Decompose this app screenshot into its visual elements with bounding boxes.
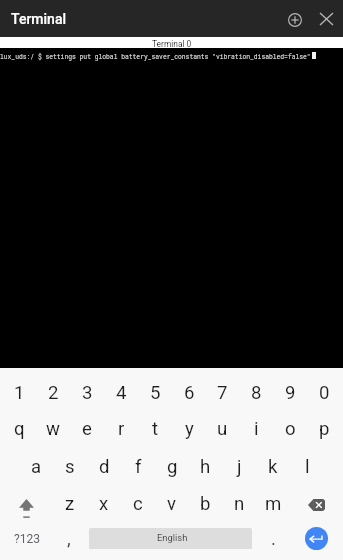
button[interactable]: d bbox=[87, 449, 121, 485]
staticText: p bbox=[319, 418, 330, 440]
staticText: . bbox=[271, 528, 276, 550]
button[interactable]: 2 bbox=[36, 375, 70, 411]
button[interactable]: New session bbox=[276, 0, 313, 37]
staticText: y bbox=[185, 418, 194, 440]
staticText: h bbox=[200, 456, 211, 478]
button[interactable]: 6 bbox=[172, 375, 206, 411]
button[interactable]: Shift bbox=[0, 487, 51, 523]
staticText: , bbox=[67, 528, 71, 550]
button[interactable]: s bbox=[53, 449, 87, 485]
staticText: lux_uds:/ $ settings put global battery_… bbox=[0, 52, 311, 60]
button[interactable]: Enter bbox=[305, 527, 328, 550]
button[interactable]: n bbox=[222, 486, 256, 522]
staticText: d bbox=[99, 456, 110, 478]
button[interactable]: r bbox=[104, 411, 138, 447]
button[interactable]: 5 bbox=[138, 375, 172, 411]
staticText: 4 bbox=[116, 382, 127, 404]
button[interactable]: ?123 bbox=[1, 521, 53, 557]
staticText: j bbox=[237, 456, 242, 478]
staticText: ?123 bbox=[14, 532, 41, 546]
button[interactable]: z bbox=[53, 486, 87, 522]
button[interactable]: f bbox=[121, 449, 155, 485]
button[interactable]: l bbox=[290, 449, 324, 485]
button[interactable]: v bbox=[155, 486, 189, 522]
staticText: z bbox=[65, 493, 75, 515]
button[interactable]: Backspace bbox=[291, 487, 342, 523]
staticText: o bbox=[285, 418, 296, 440]
staticText: 6 bbox=[184, 382, 195, 404]
staticText: English bbox=[157, 532, 188, 543]
staticText: c bbox=[133, 493, 143, 515]
button[interactable]: g bbox=[155, 449, 189, 485]
staticText: g bbox=[167, 456, 178, 478]
staticText: i bbox=[254, 418, 259, 440]
button[interactable]: 1 bbox=[2, 375, 36, 411]
staticText: v bbox=[167, 493, 177, 515]
staticText: n bbox=[234, 493, 245, 515]
button[interactable]: b bbox=[188, 486, 222, 522]
button[interactable]: m bbox=[256, 486, 290, 522]
staticText: 9 bbox=[285, 382, 296, 404]
staticText: 2 bbox=[48, 382, 59, 404]
button[interactable]: w bbox=[36, 411, 70, 447]
staticText: x bbox=[99, 493, 109, 515]
staticText: t bbox=[152, 418, 159, 440]
staticText: k bbox=[268, 456, 278, 478]
button[interactable]: . bbox=[256, 521, 290, 557]
button[interactable]: Close bbox=[308, 0, 343, 37]
staticText: 1 bbox=[14, 382, 25, 404]
staticText: q bbox=[14, 418, 25, 440]
button[interactable]: x bbox=[87, 486, 121, 522]
button[interactable]: c bbox=[121, 486, 155, 522]
button[interactable]: English bbox=[89, 528, 252, 549]
button[interactable]: y bbox=[172, 411, 206, 447]
button[interactable]: u bbox=[205, 411, 239, 447]
button[interactable]: , bbox=[52, 521, 86, 557]
button[interactable]: 7 bbox=[205, 375, 239, 411]
button[interactable]: 8 bbox=[239, 375, 273, 411]
staticText: 0 bbox=[319, 382, 330, 404]
staticText: r bbox=[118, 418, 125, 440]
button[interactable]: a bbox=[19, 449, 53, 485]
staticText: Terminal 0 bbox=[152, 39, 192, 49]
staticText: m bbox=[265, 493, 282, 515]
button[interactable]: 0 bbox=[307, 375, 341, 411]
button[interactable]: Terminal 0 bbox=[0, 37, 343, 48]
button[interactable]: i bbox=[239, 411, 273, 447]
staticText: 3 bbox=[82, 382, 93, 404]
staticText: s bbox=[65, 456, 75, 478]
button[interactable]: j bbox=[222, 449, 256, 485]
button[interactable]: 3 bbox=[70, 375, 104, 411]
button[interactable]: p bbox=[307, 411, 341, 447]
button[interactable]: e bbox=[70, 411, 104, 447]
staticText: e bbox=[82, 418, 92, 440]
staticText: b bbox=[200, 493, 211, 515]
button[interactable]: k bbox=[256, 449, 290, 485]
staticText: 7 bbox=[217, 382, 228, 404]
button[interactable]: q bbox=[2, 411, 36, 447]
button[interactable]: o bbox=[273, 411, 307, 447]
button[interactable]: h bbox=[188, 449, 222, 485]
staticText: 5 bbox=[150, 382, 161, 404]
staticText: 8 bbox=[251, 382, 262, 404]
staticText: f bbox=[135, 456, 142, 478]
button[interactable]: 9 bbox=[273, 375, 307, 411]
staticText: l bbox=[305, 456, 310, 478]
button[interactable]: t bbox=[138, 411, 172, 447]
staticText: a bbox=[31, 456, 42, 478]
staticText: u bbox=[217, 418, 228, 440]
button[interactable]: 4 bbox=[104, 375, 138, 411]
staticText: Terminal bbox=[11, 11, 66, 27]
staticText: w bbox=[46, 418, 60, 440]
